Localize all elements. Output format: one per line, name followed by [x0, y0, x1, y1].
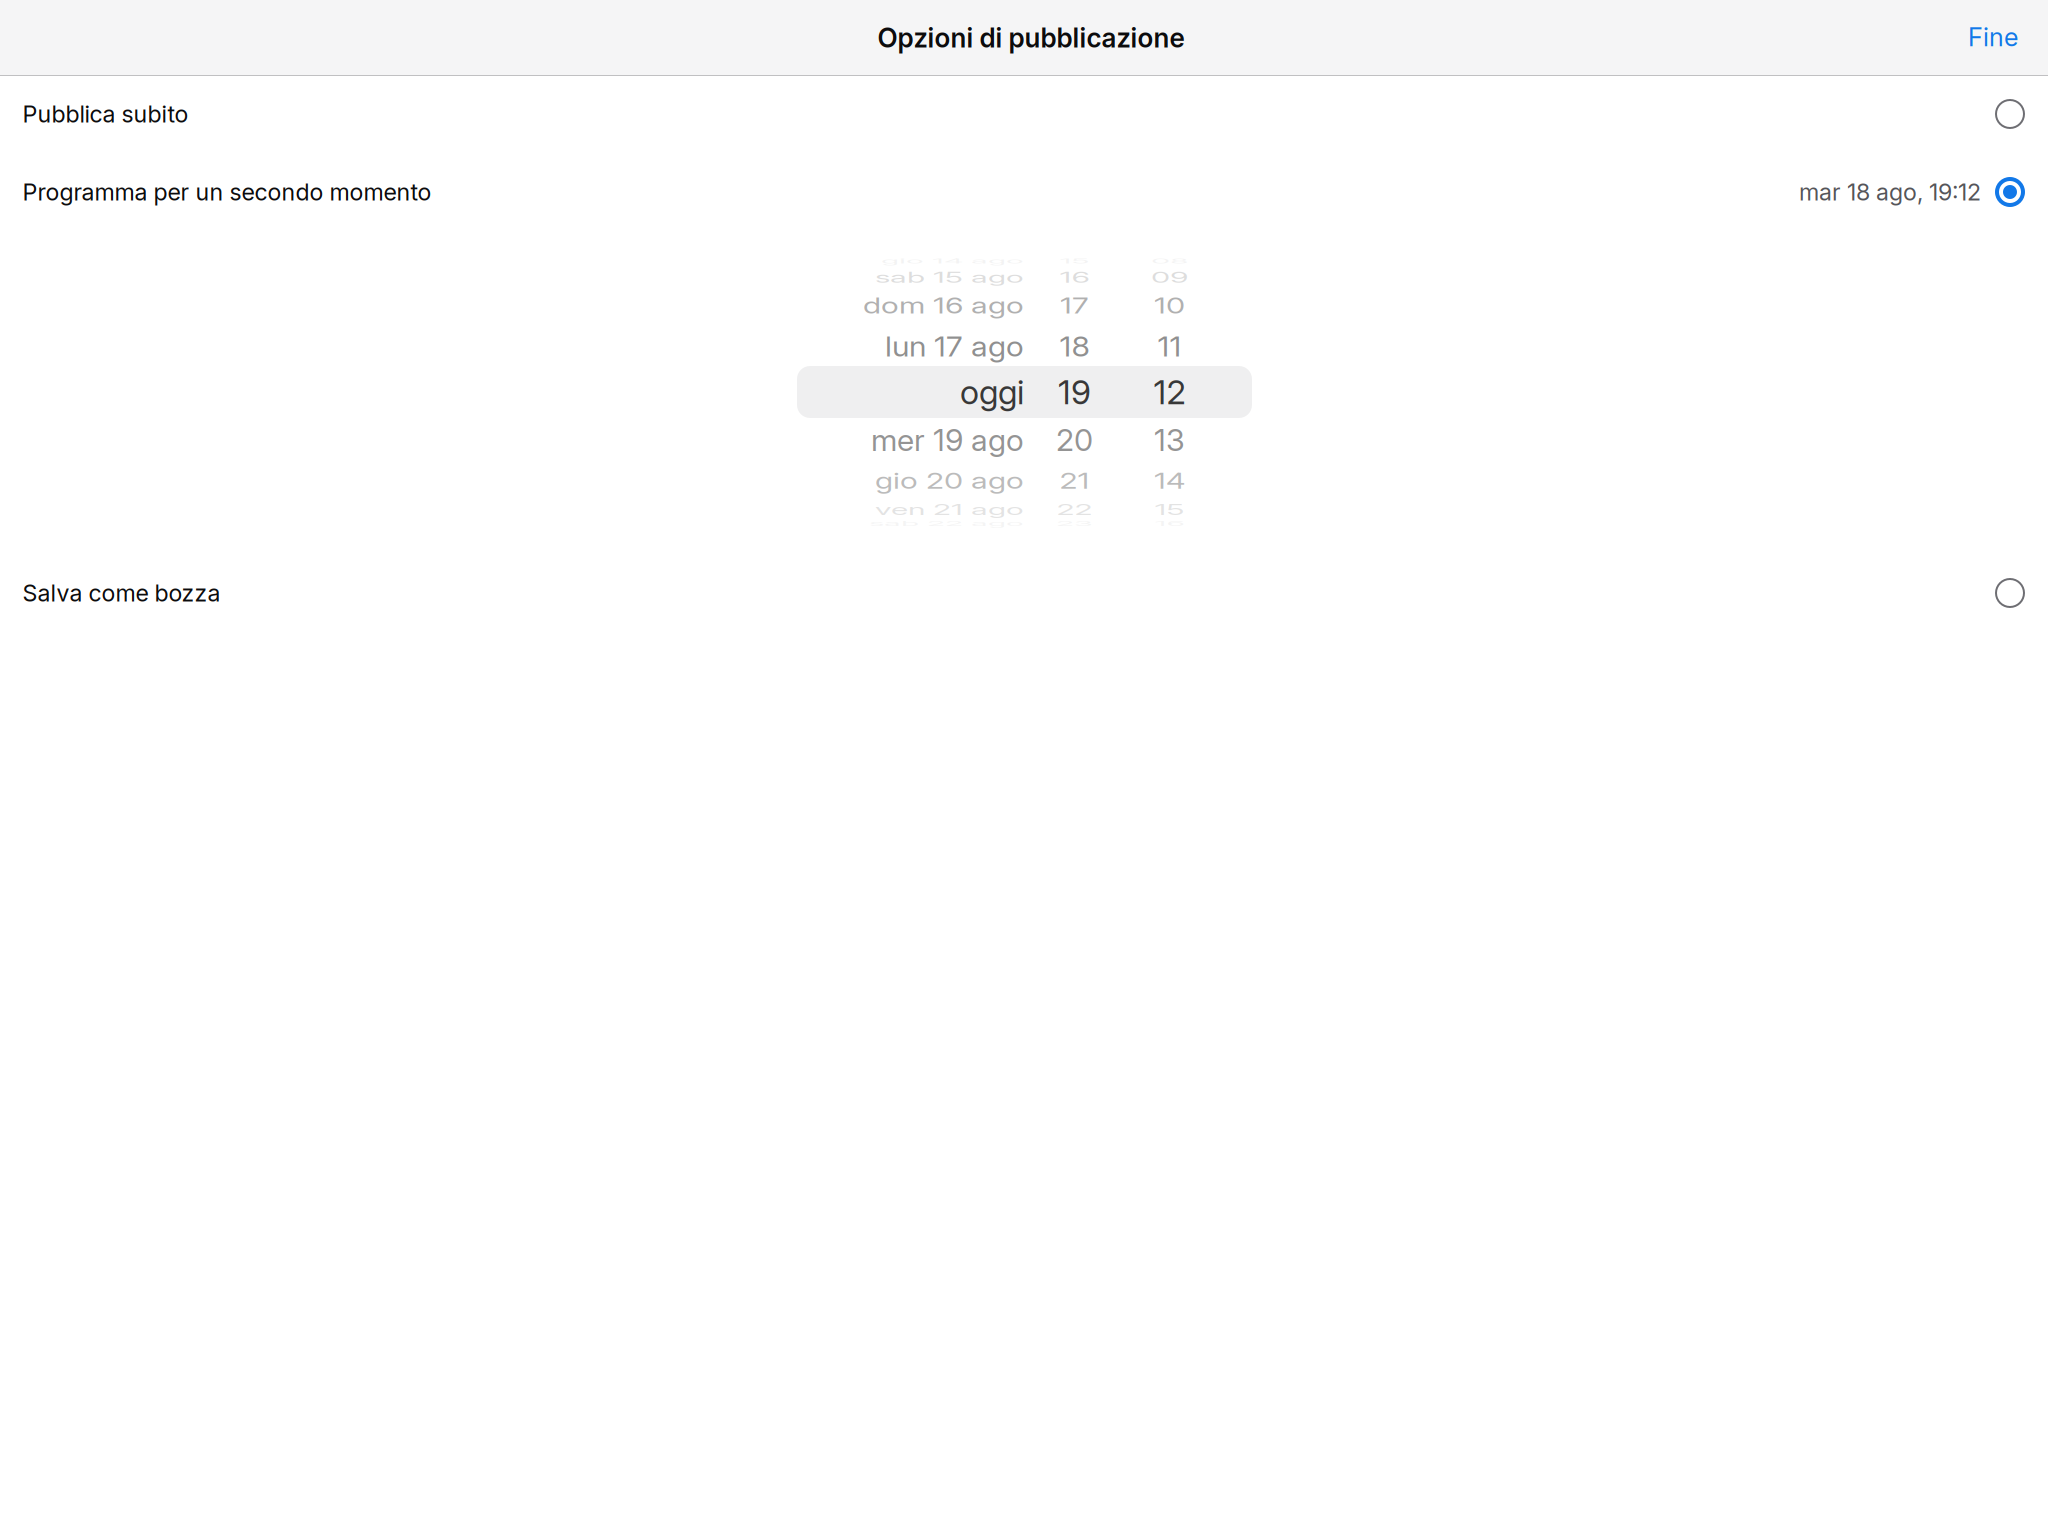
staticText: 22 [1056, 491, 1092, 528]
staticText: mer 19 ago [871, 422, 1024, 459]
staticText: 10 [1154, 287, 1185, 324]
staticText: 21 [1059, 462, 1089, 499]
staticText: 23 [1056, 505, 1093, 542]
staticText: Opzioni di pubblicazione [877, 22, 1184, 54]
staticText: 18 [1059, 328, 1089, 365]
staticText: 15 [1154, 491, 1184, 528]
button[interactable]: Salva come bozza [0, 562, 2048, 624]
staticText: gio 20 ago [875, 462, 1024, 499]
staticText: oggi [960, 372, 1024, 412]
staticText: dom 16 ago [863, 287, 1024, 324]
staticText: 17 [1060, 287, 1089, 324]
staticText: 15 [1059, 242, 1089, 279]
staticText: 16 [1154, 505, 1184, 542]
staticText: ven 21 ago [875, 491, 1024, 528]
staticText: 12 [1153, 372, 1185, 412]
staticText: sab 22 ago [869, 505, 1024, 542]
staticText: 20 [1056, 422, 1093, 459]
staticText: gio 14 ago [881, 242, 1024, 279]
staticText: 08 [1151, 242, 1188, 279]
staticText: 09 [1151, 259, 1188, 296]
staticText: Pubblica subito [22, 100, 188, 128]
button[interactable]: Fine [1968, 0, 2048, 74]
button[interactable]: Pubblica subito [0, 75, 2048, 153]
staticText: Salva come bozza [22, 579, 220, 607]
staticText: mar 18 ago, 19:12 [1799, 178, 1981, 206]
button[interactable]: Programma per un secondo momento [0, 153, 2048, 231]
staticText: 13 [1154, 422, 1185, 459]
staticText: 14 [1154, 462, 1185, 499]
staticText: 16 [1059, 259, 1089, 296]
staticText: Programma per un secondo momento [22, 178, 431, 206]
staticText: Fine [1968, 22, 2018, 52]
staticText: 11 [1157, 328, 1181, 365]
staticText: lun 17 ago [885, 328, 1024, 365]
staticText: 19 [1058, 372, 1091, 412]
staticText: sab 15 ago [875, 259, 1024, 296]
